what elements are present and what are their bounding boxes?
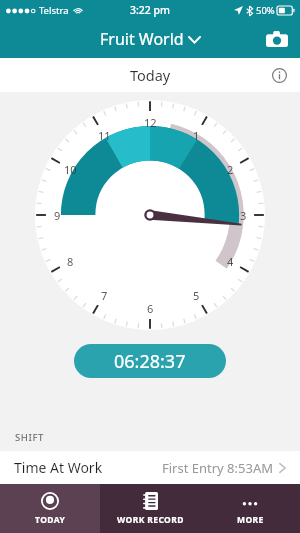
staticText: Fruit World bbox=[100, 28, 184, 50]
staticText: First Entry 8:53AM bbox=[162, 459, 273, 477]
staticText: 7 bbox=[101, 288, 108, 303]
staticText: Today bbox=[130, 65, 171, 85]
staticText: 3 bbox=[240, 208, 247, 223]
staticText: Time At Work bbox=[14, 458, 103, 477]
button[interactable]: Fruit World bbox=[94, 25, 206, 53]
button[interactable]: Time At Work bbox=[0, 451, 300, 484]
staticText: SHIFT bbox=[15, 431, 45, 444]
staticText: 11 bbox=[98, 128, 111, 143]
staticText: 1 bbox=[193, 128, 200, 143]
staticText: 10 bbox=[64, 162, 77, 177]
button[interactable]: MORE bbox=[200, 484, 300, 533]
staticText: WORK RECORD bbox=[117, 514, 184, 526]
staticText: 5 bbox=[193, 288, 200, 303]
staticText: 50% bbox=[256, 4, 275, 17]
staticText: 06:28:37 bbox=[114, 349, 186, 374]
staticText: Telstra bbox=[39, 4, 69, 17]
staticText: 8 bbox=[67, 254, 74, 269]
button[interactable]: Info bbox=[267, 63, 291, 87]
staticText: TODAY bbox=[35, 514, 66, 526]
staticText: 9 bbox=[54, 208, 61, 223]
staticText: 12 bbox=[144, 115, 157, 130]
staticText: 6 bbox=[147, 301, 154, 316]
staticText: 4 bbox=[227, 254, 234, 269]
staticText: 2 bbox=[227, 162, 234, 177]
staticText: 3:22 pm bbox=[130, 3, 171, 17]
button[interactable]: WORK RECORD bbox=[100, 484, 200, 533]
button[interactable]: 06:28:37 bbox=[74, 344, 226, 378]
button[interactable]: TODAY bbox=[0, 484, 100, 533]
button[interactable]: Camera bbox=[262, 27, 292, 51]
staticText: MORE bbox=[237, 514, 264, 526]
